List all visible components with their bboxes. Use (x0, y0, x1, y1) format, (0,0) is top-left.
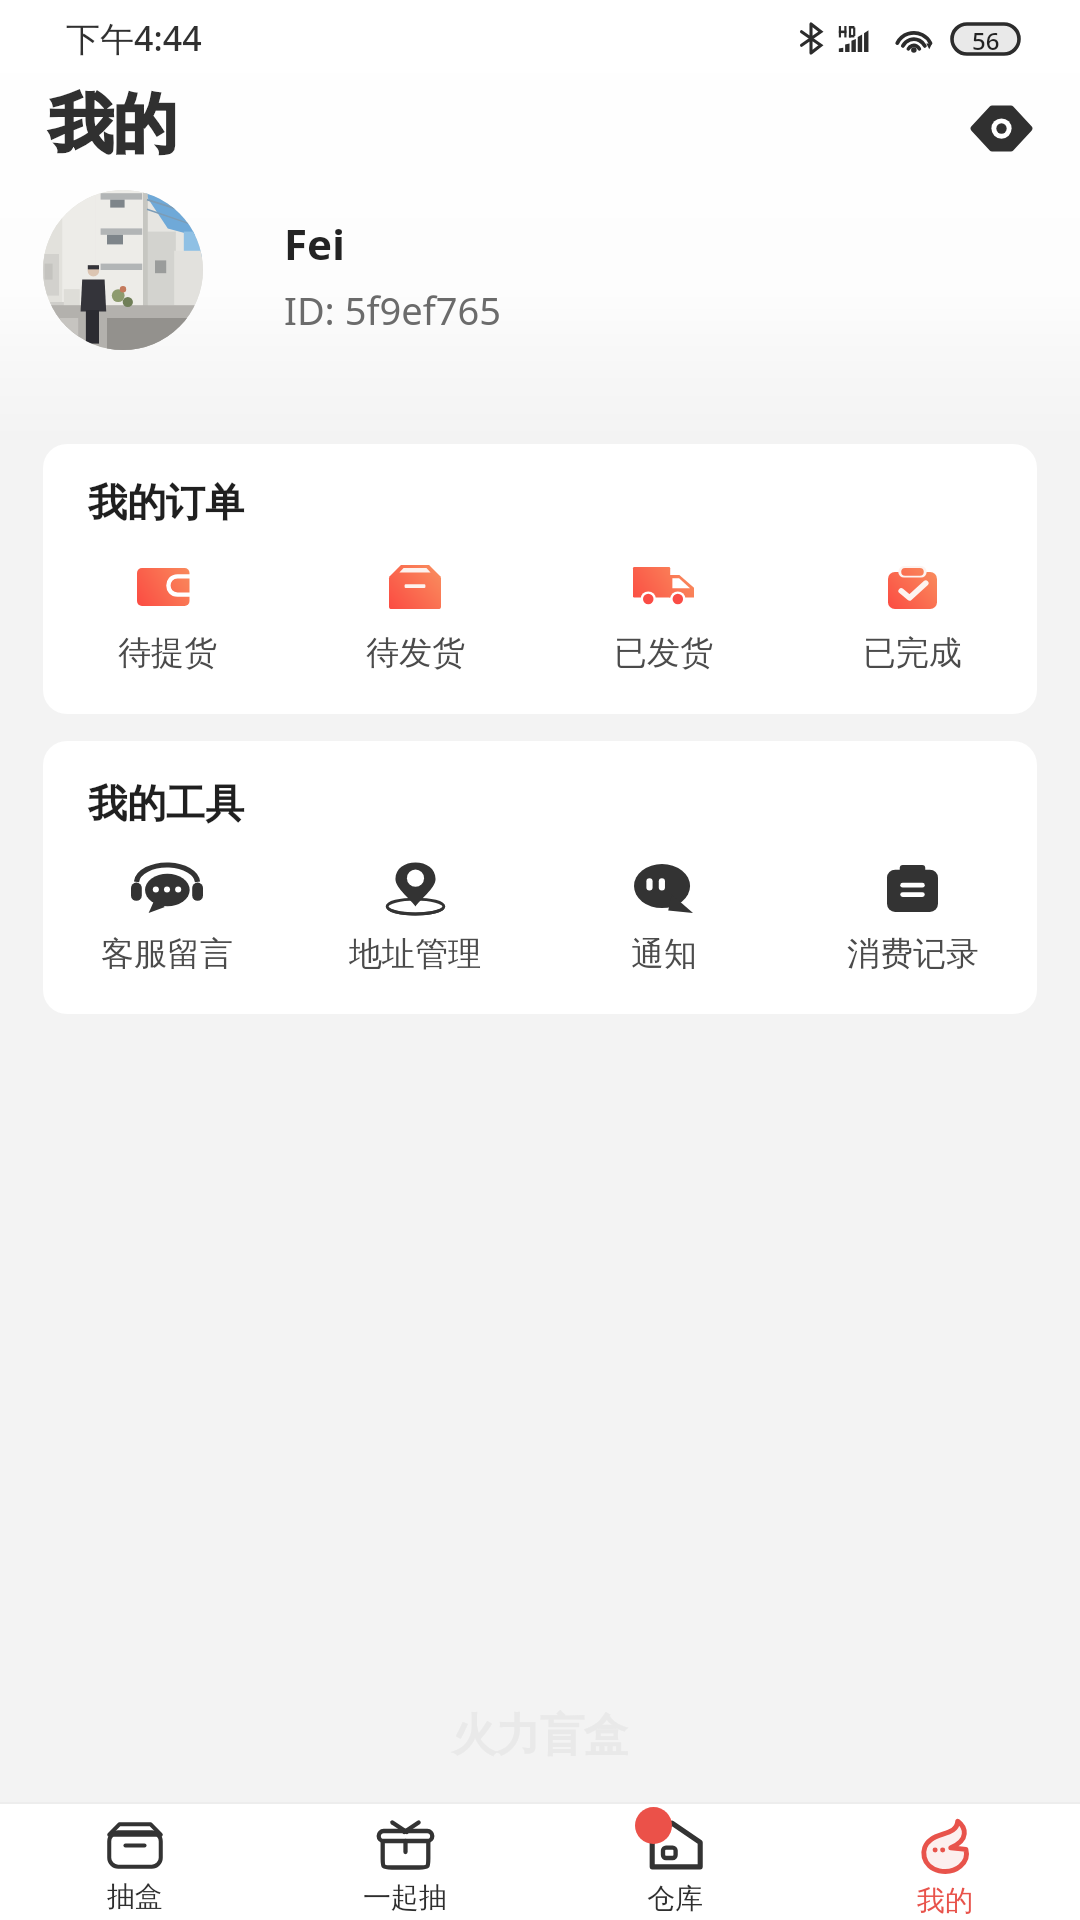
staticText: ID: 5f9ef765 (284, 284, 501, 336)
staticText: 待提货 (118, 632, 217, 674)
staticText: 待发货 (366, 632, 465, 674)
button[interactable]: 待提货 (43, 559, 291, 674)
button[interactable]: 一起抽 (270, 1809, 540, 1915)
staticText: 我的订单 (88, 478, 244, 527)
button[interactable]: 仓库 (540, 1808, 810, 1916)
button[interactable]: 抽盒 (0, 1811, 270, 1914)
staticText: 已发货 (614, 632, 713, 674)
button[interactable]: Preview (961, 88, 1041, 168)
button[interactable]: 通知 (539, 860, 788, 975)
staticText: 一起抽 (363, 1880, 447, 1915)
button[interactable]: Fei (0, 180, 1080, 360)
staticText: 我的 (917, 1883, 973, 1918)
staticText: 火力盲盒 (452, 1708, 628, 1763)
button[interactable]: 已发货 (539, 559, 788, 674)
staticText: 通知 (631, 933, 697, 975)
staticText: 仓库 (647, 1881, 703, 1916)
staticText: Fei (284, 215, 345, 272)
button[interactable]: 客服留言 (43, 860, 291, 975)
staticText: 已完成 (863, 632, 962, 674)
button[interactable]: 我的 (810, 1807, 1080, 1918)
staticText: 消费记录 (847, 933, 979, 975)
button[interactable]: 已完成 (788, 559, 1037, 674)
staticText: 地址管理 (349, 933, 481, 975)
button[interactable]: 地址管理 (291, 860, 539, 975)
staticText: 客服留言 (101, 933, 233, 975)
staticText: 56 (972, 24, 1000, 54)
staticText: 我的工具 (88, 779, 244, 828)
staticText: 下午4:44 (66, 15, 202, 61)
staticText: 抽盒 (107, 1879, 163, 1914)
button[interactable]: 待发货 (291, 559, 539, 674)
button[interactable]: 消费记录 (788, 860, 1037, 975)
staticText: 我的 (49, 84, 177, 165)
